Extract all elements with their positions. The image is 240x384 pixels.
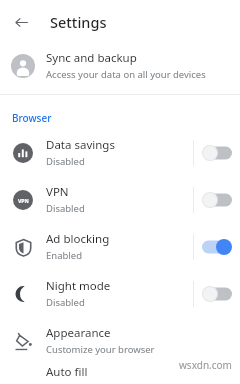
button[interactable]: Night mode xyxy=(0,270,240,317)
staticText: Disabled xyxy=(46,155,85,168)
button[interactable]: Back xyxy=(8,9,34,35)
staticText: Browser xyxy=(12,111,52,125)
button[interactable]: Night mode switch xyxy=(194,274,240,314)
staticText: Enabled xyxy=(46,249,82,262)
staticText: Data savings xyxy=(46,137,115,153)
staticText: Customize your browser xyxy=(46,343,155,356)
staticText: Ad blocking xyxy=(46,231,110,247)
button[interactable]: Data savings xyxy=(0,129,240,176)
button[interactable]: Auto fill xyxy=(0,364,240,384)
staticText: Access your data on all your devices xyxy=(46,68,206,81)
button[interactable]: VPN xyxy=(0,176,240,223)
button[interactable]: VPN switch xyxy=(194,180,240,220)
staticText: Sync and backup xyxy=(46,50,137,66)
button[interactable]: Appearance xyxy=(0,317,240,364)
staticText: Disabled xyxy=(46,202,85,215)
staticText: Appearance xyxy=(46,325,111,341)
staticText: Disabled xyxy=(46,296,85,309)
button[interactable]: Ad blocking xyxy=(0,223,240,270)
button[interactable]: Sync and backup xyxy=(0,42,240,89)
staticText: Auto fill xyxy=(46,364,88,380)
staticText: VPN xyxy=(18,197,29,204)
staticText: Settings xyxy=(50,12,107,32)
staticText: wsxdn.com xyxy=(179,358,232,372)
button[interactable]: Ad blocking switch xyxy=(194,227,240,267)
staticText: Night mode xyxy=(46,278,111,294)
staticText: VPN xyxy=(46,184,69,200)
button[interactable]: Data savings switch xyxy=(194,133,240,173)
